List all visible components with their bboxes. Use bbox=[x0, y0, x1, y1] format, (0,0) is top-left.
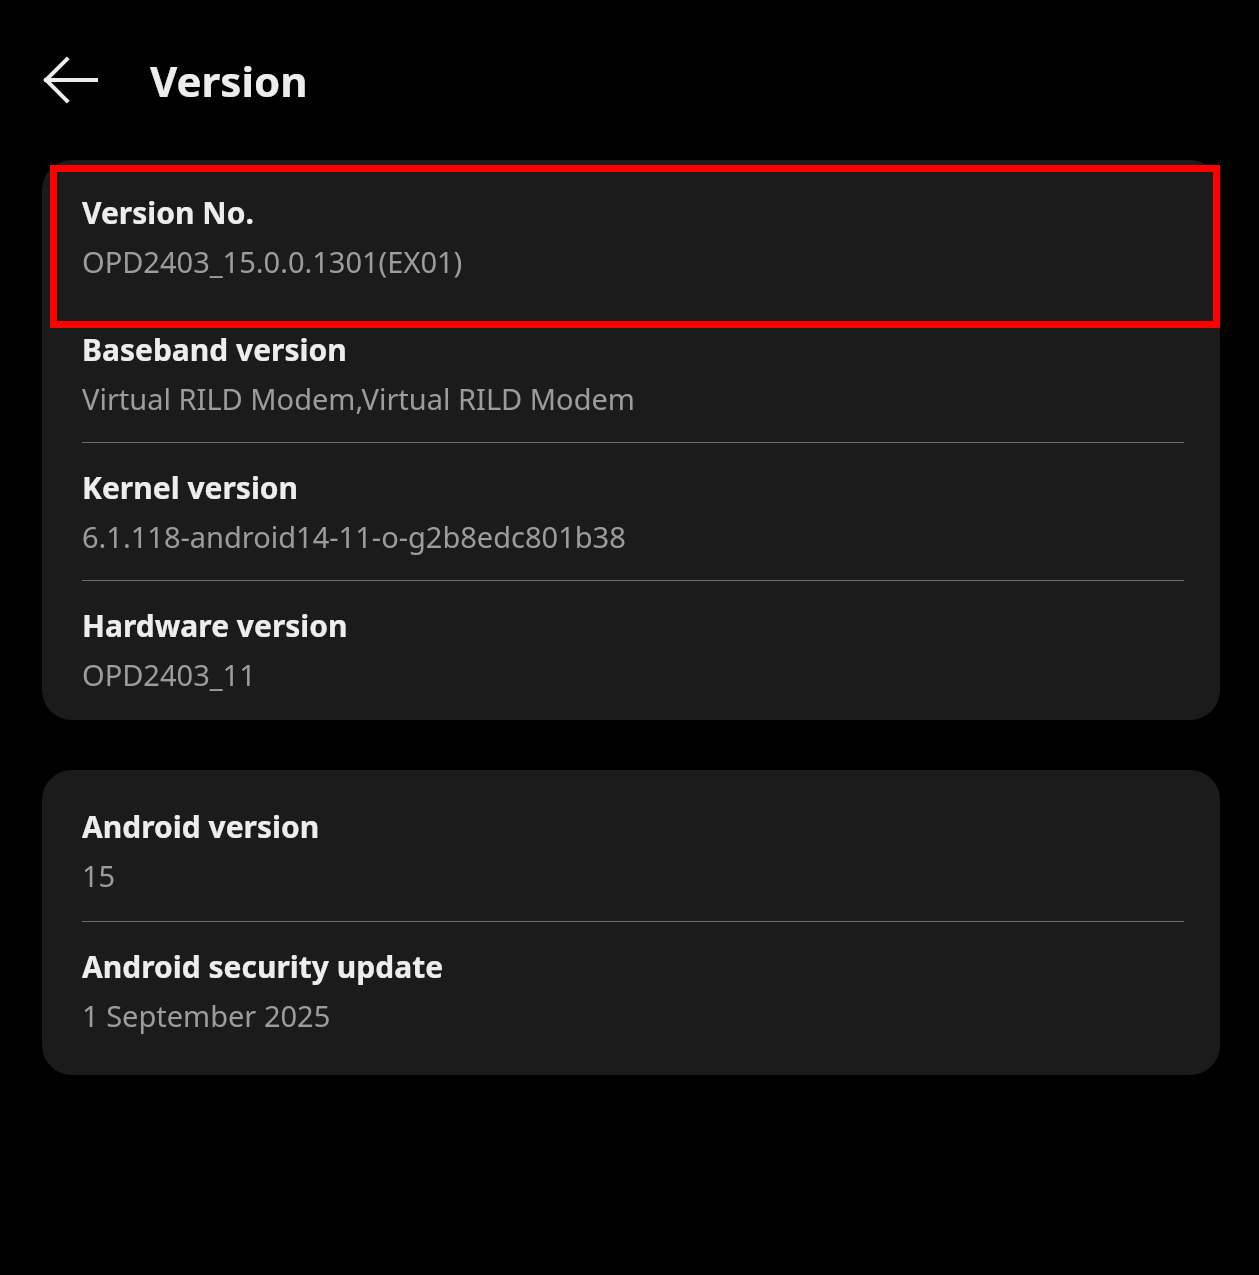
staticText: 15 bbox=[82, 856, 116, 895]
button[interactable]: Back bbox=[22, 32, 118, 128]
staticText: OPD2403_15.0.0.1301(EX01) bbox=[82, 242, 463, 281]
button[interactable]: Baseband version bbox=[42, 311, 1220, 442]
button[interactable]: Android version bbox=[42, 770, 1220, 921]
button[interactable]: Version No. bbox=[42, 160, 1220, 311]
staticText: Hardware version bbox=[82, 605, 348, 646]
staticText: Version bbox=[150, 52, 308, 109]
staticText: OPD2403_11 bbox=[82, 655, 256, 694]
staticText: Android version bbox=[82, 806, 320, 847]
staticText: Kernel version bbox=[82, 467, 299, 508]
staticText: 6.1.118-android14-11-o-g2b8edc801b38 bbox=[82, 517, 626, 556]
button[interactable]: Kernel version bbox=[42, 443, 1220, 580]
staticText: 1 September 2025 bbox=[82, 996, 331, 1035]
staticText: Baseband version bbox=[82, 329, 347, 370]
button[interactable]: Hardware version bbox=[42, 581, 1220, 720]
staticText: Android security update bbox=[82, 946, 444, 987]
staticText: Version No. bbox=[82, 192, 254, 233]
button[interactable]: Android security update bbox=[42, 922, 1220, 1075]
staticText: Virtual RILD Modem,Virtual RILD Modem bbox=[82, 379, 635, 418]
